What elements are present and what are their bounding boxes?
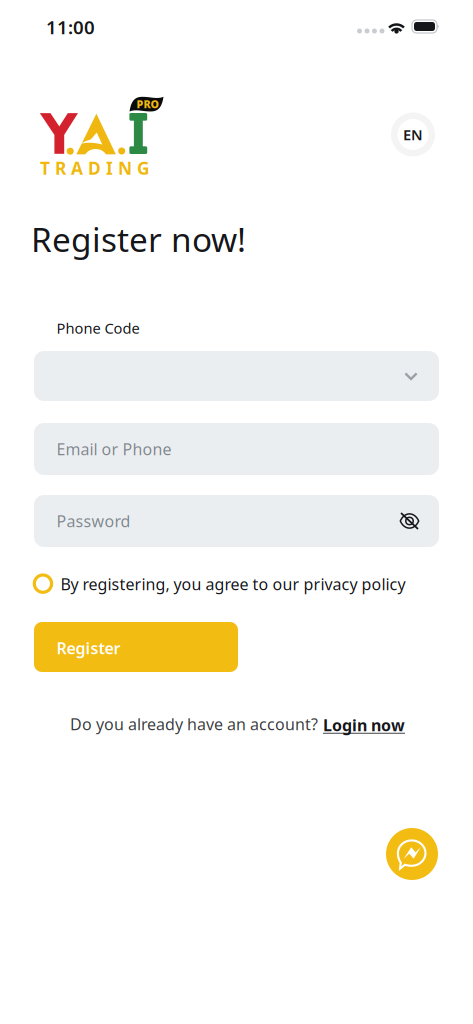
button[interactable] (34, 351, 439, 401)
button[interactable]: Password (34, 495, 439, 547)
button[interactable]: Email or Phone (34, 423, 439, 475)
staticText: Login now (323, 714, 405, 736)
staticText: T R A D I N G (40, 156, 150, 179)
staticText: Register (56, 637, 120, 659)
button[interactable]: By registering, you agree to our privacy… (34, 569, 439, 599)
staticText: By registering, you agree to our privacy… (60, 573, 405, 595)
staticText: 11:00 (46, 15, 95, 39)
button[interactable]: Login now (323, 714, 413, 736)
button[interactable]: Chat on Messenger (386, 828, 438, 880)
staticText: Email or Phone (56, 438, 171, 460)
staticText: EN (403, 125, 423, 144)
staticText: Register now! (31, 217, 246, 261)
staticText: Phone Code (56, 318, 139, 338)
staticText: Do you already have an account? (70, 713, 318, 735)
staticText: PRO (136, 97, 159, 111)
button[interactable]: Language: English (391, 112, 435, 156)
button[interactable]: Register (34, 622, 238, 672)
staticText: Password (56, 510, 130, 532)
